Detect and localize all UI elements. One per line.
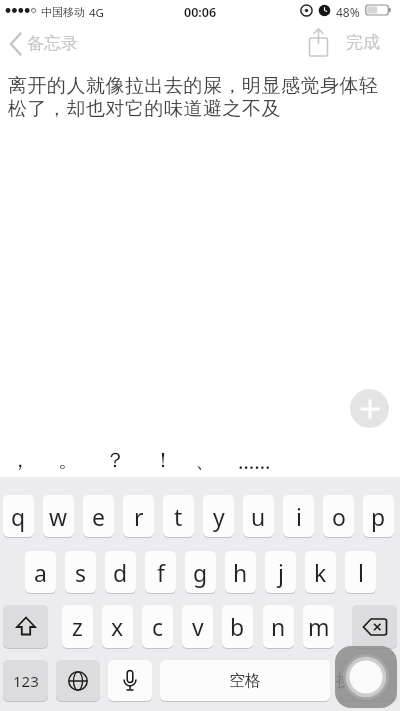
staticText: 完成 [346,32,380,53]
staticText: v [192,611,204,642]
staticText: d [113,557,128,588]
button[interactable]: s [65,551,96,593]
button[interactable]: e [83,495,114,537]
staticText: 空格 [229,671,261,691]
button[interactable]: 备忘录 [6,30,86,60]
button[interactable]: 123 [3,660,48,701]
button[interactable]: i [283,495,314,537]
button[interactable]: u [243,495,274,537]
staticText: 123 [13,671,39,691]
staticText: f [157,557,165,588]
button[interactable] [350,389,389,428]
button[interactable]: b [222,605,253,648]
staticText: 。 [58,447,79,473]
button[interactable]: ， [10,447,44,475]
staticText: x [111,611,124,642]
button[interactable]: ！ [153,447,187,475]
button[interactable]: g [185,551,216,593]
staticText: m [308,611,330,642]
staticText: 4G [89,5,104,21]
button[interactable] [56,660,100,701]
staticText: ！ [153,447,174,473]
button[interactable]: 空格 [160,660,330,701]
button[interactable]: r [123,495,154,537]
button[interactable]: v [182,605,213,648]
staticText: s [75,557,87,588]
button[interactable]: y [203,495,234,537]
staticText: a [34,557,47,588]
staticText: e [92,501,105,532]
button[interactable]: t [163,495,194,537]
staticText: c [152,611,164,642]
button[interactable]: l [345,551,376,593]
staticText: o [332,501,346,532]
staticText: 00:06 [184,4,217,21]
button[interactable]: h [225,551,256,593]
staticText: 48% [336,4,360,20]
button[interactable]: 完成 [346,32,392,58]
button[interactable]: d [105,551,136,593]
button[interactable]: …… [238,447,272,475]
staticText: j [278,557,284,588]
staticText: 中国移动 [41,5,85,19]
staticText: t [174,501,183,532]
button[interactable]: o [323,495,354,537]
button[interactable]: j [265,551,296,593]
button[interactable]: c [142,605,173,648]
staticText: l [358,557,364,588]
button[interactable] [3,605,48,648]
button[interactable] [338,660,397,701]
button[interactable]: f [145,551,176,593]
button[interactable]: 、 [195,447,229,475]
staticText: 换行 [336,670,370,691]
button[interactable]: q [3,495,34,537]
button[interactable]: k [305,551,336,593]
button[interactable]: ？ [105,447,139,475]
button[interactable]: w [43,495,74,537]
button[interactable]: a [25,551,56,593]
button[interactable] [108,660,152,701]
button[interactable]: x [102,605,133,648]
staticText: q [11,501,26,532]
button[interactable]: z [62,605,93,648]
staticText: b [230,611,245,642]
staticText: g [193,557,208,588]
staticText: ， [10,447,31,473]
staticText: …… [238,447,271,475]
button[interactable] [335,646,397,708]
staticText: k [314,557,327,588]
staticText: i [296,501,302,532]
staticText: n [271,611,286,642]
staticText: ？ [105,447,126,473]
staticText: p [371,501,386,532]
staticText: 备忘录 [27,33,78,54]
staticText: h [233,557,248,588]
staticText: y [213,501,225,532]
staticText: 离开的人就像拉出去的屎，明显感觉身体轻 松了，却也对它的味道避之不及 [8,74,379,121]
button[interactable]: n [263,605,294,648]
staticText: w [49,501,68,532]
button[interactable]: p [363,495,394,537]
staticText: r [134,501,144,532]
staticText: u [251,501,266,532]
staticText: 、 [195,447,216,473]
button[interactable]: m [303,605,334,648]
button[interactable]: 。 [58,447,92,475]
staticText: z [72,611,83,642]
button[interactable] [352,605,397,648]
button[interactable] [306,27,334,59]
